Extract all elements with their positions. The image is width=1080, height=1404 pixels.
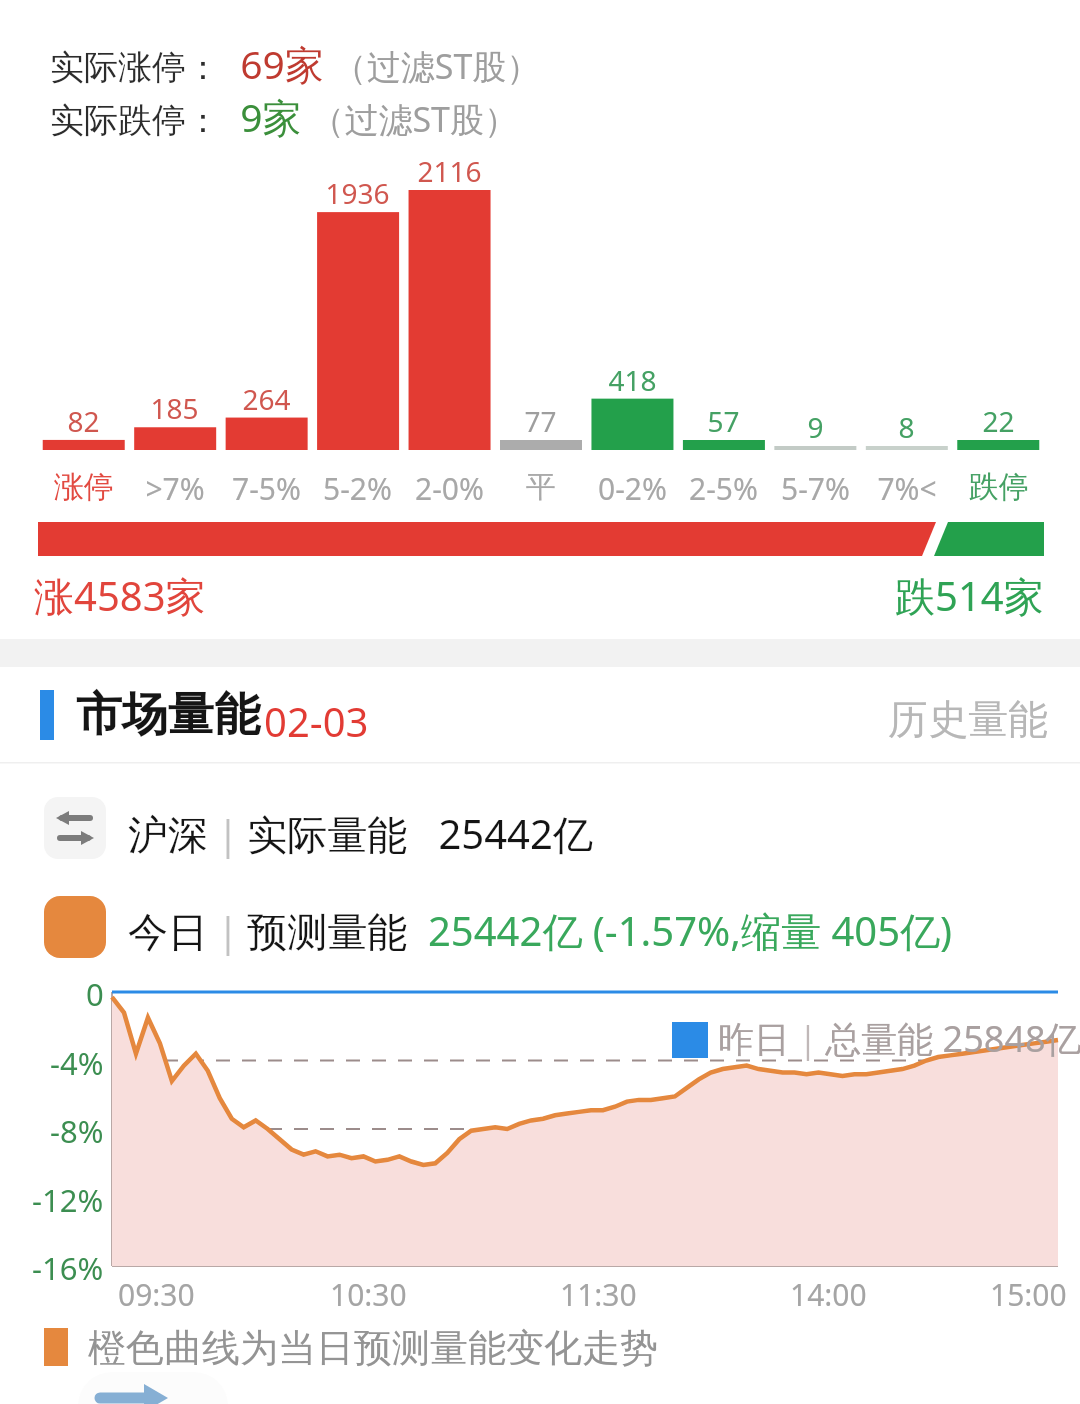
- staticText: 市场量能: [76, 686, 260, 744]
- staticText: 2-5%: [689, 468, 758, 509]
- staticText: 418: [608, 361, 657, 399]
- staticText: -12%: [32, 1179, 104, 1221]
- staticText: 57: [707, 402, 740, 440]
- staticText: 11:30: [560, 1274, 637, 1315]
- staticText: 跌514家: [895, 568, 1044, 623]
- staticText: 涨停: [54, 468, 114, 506]
- staticText: 264: [242, 380, 291, 418]
- staticText: 涨4583家: [34, 568, 206, 623]
- staticText: 0-2%: [598, 468, 667, 509]
- button[interactable]: 下一步: [78, 1372, 228, 1404]
- staticText: -4%: [50, 1042, 104, 1084]
- staticText: 0: [86, 973, 104, 1015]
- staticText: >7%: [145, 468, 205, 509]
- staticText: 185: [150, 389, 199, 427]
- staticText: 10:30: [330, 1274, 407, 1315]
- staticText: 昨日｜总量能 25848亿: [718, 1014, 1080, 1063]
- staticText: 8: [898, 408, 915, 446]
- staticText: 实际涨停： 69家 （过滤ST股）: [50, 37, 541, 90]
- staticText: 橙色曲线为当日预测量能变化走势: [88, 1324, 658, 1372]
- staticText: 77: [524, 402, 557, 440]
- staticText: 5-7%: [781, 468, 850, 509]
- staticText: 22: [982, 402, 1015, 440]
- staticText: 历史量能: [888, 694, 1048, 744]
- staticText: 7%<: [877, 468, 937, 509]
- staticText: 1936: [325, 174, 390, 212]
- staticText: 9: [807, 408, 824, 446]
- button[interactable]: 切换市场: [44, 797, 106, 859]
- button[interactable]: 历史量能: [860, 676, 1060, 748]
- staticText: 实际跌停： 9家 （过滤ST股）: [50, 90, 518, 143]
- staticText: -8%: [50, 1110, 104, 1152]
- staticText: 今日｜预测量能 25442亿 (-1.57%,缩量 405亿): [128, 903, 953, 958]
- staticText: 15:00: [990, 1274, 1067, 1315]
- staticText: -16%: [32, 1247, 104, 1289]
- staticText: 02-03: [264, 694, 369, 748]
- staticText: 平: [526, 468, 556, 506]
- staticText: 7-5%: [232, 468, 301, 509]
- staticText: 14:00: [790, 1274, 867, 1315]
- staticText: 09:30: [118, 1274, 195, 1315]
- staticText: 沪深｜实际量能 25442亿: [128, 806, 593, 861]
- staticText: 2116: [417, 152, 482, 190]
- staticText: 5-2%: [323, 468, 392, 509]
- staticText: 跌停: [969, 468, 1029, 506]
- staticText: 2-0%: [415, 468, 484, 509]
- staticText: 82: [67, 402, 100, 440]
